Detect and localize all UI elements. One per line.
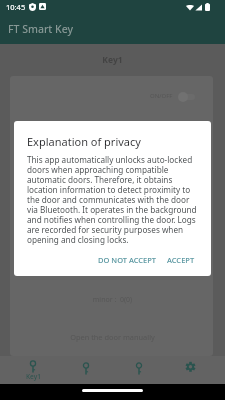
staticText: This app automatically unlocks auto-lock… bbox=[27, 154, 201, 246]
staticText: 10:45 bbox=[6, 2, 26, 12]
button[interactable]: Key1 bbox=[7, 356, 59, 384]
staticText: Explanation of privacy bbox=[27, 134, 141, 149]
staticText: Open the door manually bbox=[0, 332, 225, 342]
button[interactable]: Settings bbox=[164, 356, 216, 384]
staticText: DO NOT ACCEPT bbox=[98, 255, 157, 265]
staticText: minor : 0(0) bbox=[0, 295, 225, 305]
staticText: Key1 bbox=[26, 372, 41, 381]
staticText: FT Smart Key bbox=[8, 22, 74, 36]
staticText: ACCEPT bbox=[167, 255, 195, 265]
button[interactable]: Key 3 bbox=[113, 356, 165, 384]
button[interactable]: Key 2 bbox=[60, 356, 112, 384]
button[interactable]: DO NOT ACCEPT bbox=[93, 251, 162, 269]
staticText: ON/OFF bbox=[150, 92, 173, 100]
button[interactable]: ACCEPT bbox=[162, 251, 200, 269]
